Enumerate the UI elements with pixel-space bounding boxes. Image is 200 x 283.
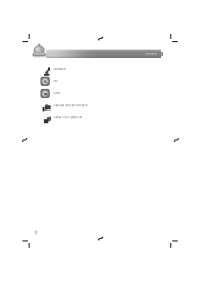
staticText: Information	[53, 68, 65, 70]
button[interactable]: Info	[38, 76, 160, 87]
staticText: Guide	[53, 92, 59, 95]
button[interactable]: Information	[38, 64, 160, 75]
staticText: Info	[53, 80, 57, 82]
staticText: Another line of sample text	[53, 116, 82, 119]
staticText: Additional notes and information	[53, 104, 87, 107]
button[interactable]: Additional notes and information	[38, 100, 160, 111]
staticText: Information	[144, 52, 156, 55]
button[interactable]: Another line of sample text	[38, 112, 160, 123]
button[interactable]: Guide	[38, 88, 160, 99]
